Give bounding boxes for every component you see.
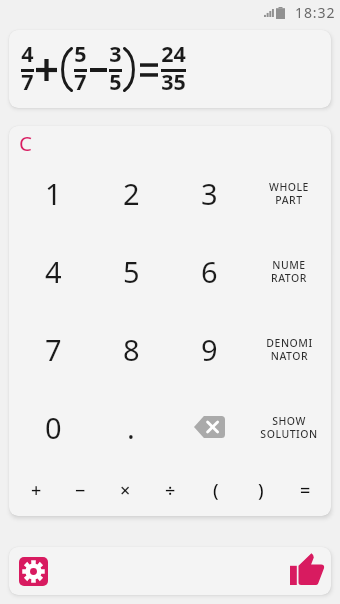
staticText: 2: [123, 174, 140, 213]
button[interactable]: 6: [170, 232, 248, 310]
staticText: ): [258, 478, 264, 503]
staticText: SHOW SOLUTION: [260, 414, 318, 441]
button[interactable]: (: [193, 466, 238, 515]
button[interactable]: Rate this app: [290, 552, 324, 585]
button[interactable]: ): [238, 466, 283, 515]
button[interactable]: 5: [92, 232, 170, 310]
staticText: .: [127, 408, 135, 447]
staticText: (: [213, 478, 219, 503]
button[interactable]: 8: [92, 310, 170, 388]
button[interactable]: 2: [92, 154, 170, 232]
staticText: 8: [123, 330, 140, 369]
staticText: 35: [161, 67, 186, 96]
staticText: 7: [21, 67, 34, 96]
other: Backspace: [194, 416, 225, 438]
staticText: 4: [45, 252, 62, 291]
button[interactable]: DENOMI NATOR: [248, 310, 326, 388]
staticText: 5: [109, 67, 122, 96]
button[interactable]: 9: [170, 310, 248, 388]
staticText: ÷: [165, 478, 176, 503]
button[interactable]: NUME RATOR: [248, 232, 326, 310]
staticText: −: [75, 478, 86, 503]
staticText: 5: [123, 252, 140, 291]
staticText: 6: [201, 252, 218, 291]
staticText: C: [19, 129, 32, 157]
staticText: DENOMI NATOR: [266, 336, 313, 363]
staticText: NUME RATOR: [271, 258, 307, 285]
button[interactable]: 7: [14, 310, 92, 388]
button[interactable]: =: [283, 466, 328, 515]
button[interactable]: WHOLE PART: [248, 154, 326, 232]
staticText: 4: [21, 39, 34, 68]
staticText: =: [300, 478, 311, 503]
button[interactable]: +: [14, 466, 58, 515]
button[interactable]: 4: [14, 232, 92, 310]
button[interactable]: ×: [103, 466, 148, 515]
button[interactable]: Backspace: [170, 388, 248, 466]
staticText: ×: [120, 478, 131, 503]
staticText: 18:32: [295, 3, 336, 22]
button[interactable]: .: [92, 388, 170, 466]
button[interactable]: SHOW SOLUTION: [248, 388, 326, 466]
staticText: 1: [45, 174, 62, 213]
staticText: WHOLE PART: [269, 180, 309, 207]
staticText: 7: [74, 67, 87, 96]
staticText: 9: [201, 330, 218, 369]
button[interactable]: ÷: [148, 466, 193, 515]
staticText: +: [31, 478, 42, 503]
button[interactable]: Settings: [19, 557, 48, 586]
staticText: 5: [74, 39, 87, 68]
button[interactable]: 0: [14, 388, 92, 466]
button[interactable]: 1: [14, 154, 92, 232]
button[interactable]: −: [58, 466, 103, 515]
staticText: 7: [45, 330, 62, 369]
staticText: 24: [161, 39, 186, 68]
staticText: 0: [45, 408, 62, 447]
button[interactable]: 3: [170, 154, 248, 232]
button[interactable]: C: [19, 129, 32, 157]
staticText: 3: [109, 39, 122, 68]
staticText: 3: [201, 174, 218, 213]
